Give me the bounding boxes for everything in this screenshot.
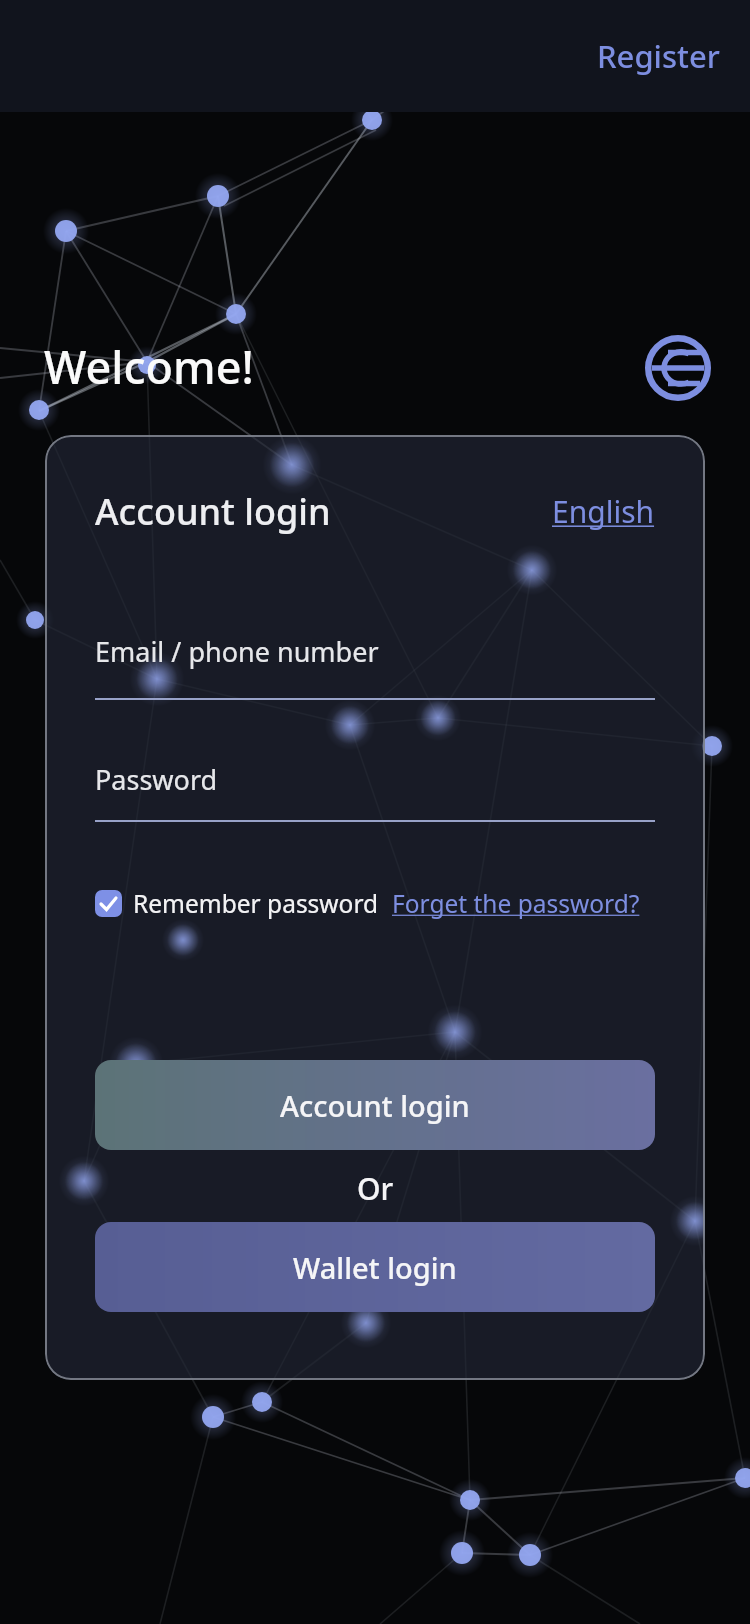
staticText: Password xyxy=(95,761,218,798)
button[interactable]: Register xyxy=(597,35,720,77)
button[interactable]: English xyxy=(552,491,655,532)
button[interactable]: Wallet login xyxy=(95,1222,655,1312)
button[interactable]: Account login xyxy=(95,1060,655,1150)
staticText: Register xyxy=(597,35,720,77)
button[interactable] xyxy=(95,890,122,917)
staticText: Or xyxy=(357,1168,394,1209)
staticText: Account login xyxy=(95,487,331,536)
staticText: English xyxy=(552,491,655,532)
staticText: Account login xyxy=(280,1086,470,1125)
staticText: Remember password xyxy=(133,887,379,920)
staticText: Email / phone number xyxy=(95,633,379,670)
button[interactable]: Forget the password? xyxy=(392,887,646,920)
staticText: Forget the password? xyxy=(392,887,646,920)
staticText: Wallet login xyxy=(293,1248,457,1287)
staticText: Welcome! xyxy=(44,336,254,397)
